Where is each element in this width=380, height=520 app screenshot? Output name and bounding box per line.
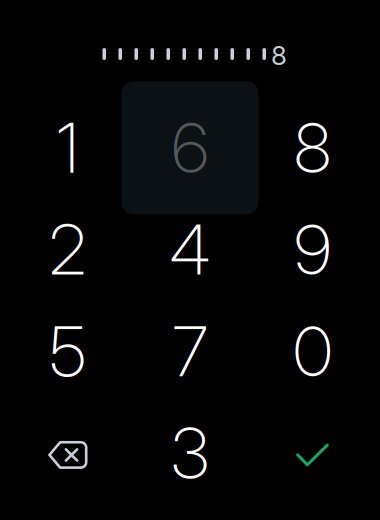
staticText: 8 [271,40,287,71]
button[interactable]: 1 [6,97,129,199]
button[interactable]: 3 [129,402,251,504]
button[interactable]: 6 [129,97,251,199]
staticText: 9 [294,208,331,291]
button[interactable]: 0 [251,300,374,402]
button[interactable]: Delete [6,402,129,504]
staticText: 3 [171,411,209,494]
button[interactable]: 5 [6,300,129,402]
button[interactable]: 8 [251,97,374,199]
button[interactable]: Confirm [251,402,374,504]
staticText: 2 [49,208,86,291]
button[interactable]: 7 [129,300,251,402]
button[interactable]: 2 [6,199,129,300]
staticText: 7 [172,310,207,393]
staticText: 6 [171,106,208,189]
staticText: 8 [294,106,331,189]
button[interactable]: 9 [251,199,374,300]
staticText: 5 [49,310,85,393]
staticText: 0 [293,310,332,393]
staticText: 1 [56,106,78,189]
staticText: 4 [169,208,210,291]
button[interactable]: 4 [129,199,251,300]
